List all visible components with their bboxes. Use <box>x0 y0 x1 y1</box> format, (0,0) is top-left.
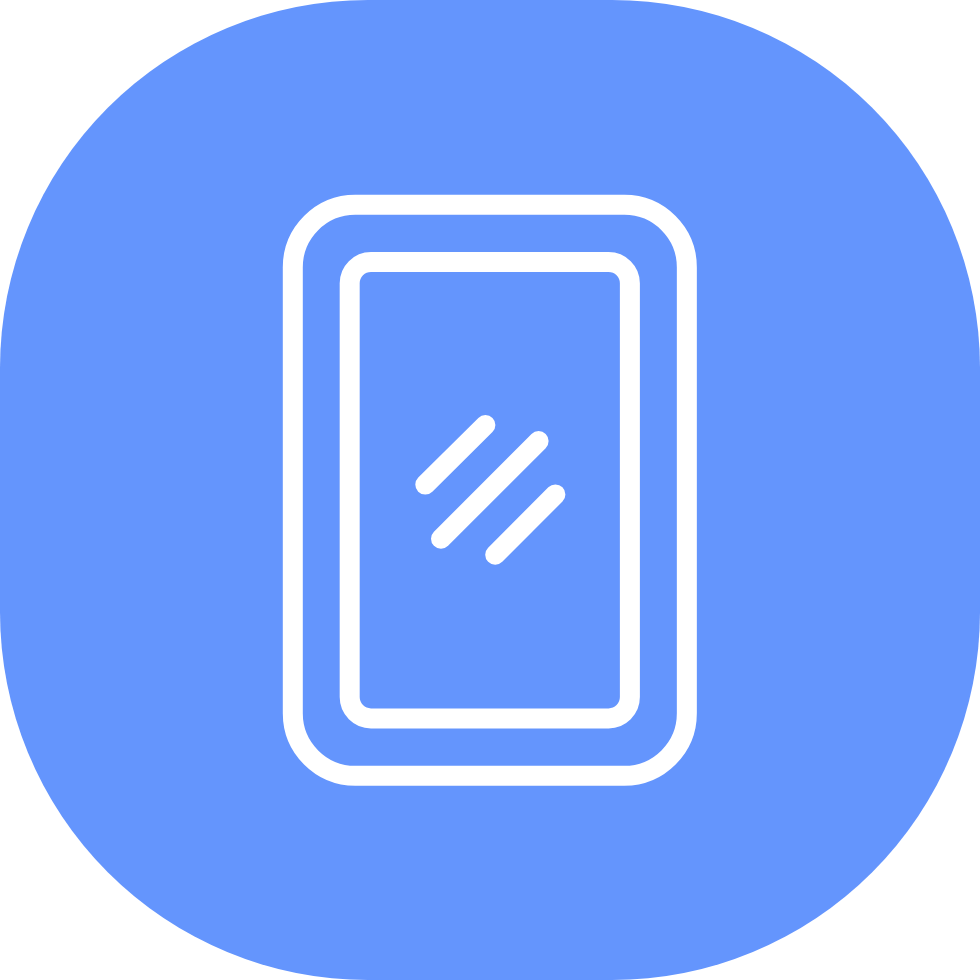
button[interactable]: Smartphone app icon <box>0 0 980 980</box>
